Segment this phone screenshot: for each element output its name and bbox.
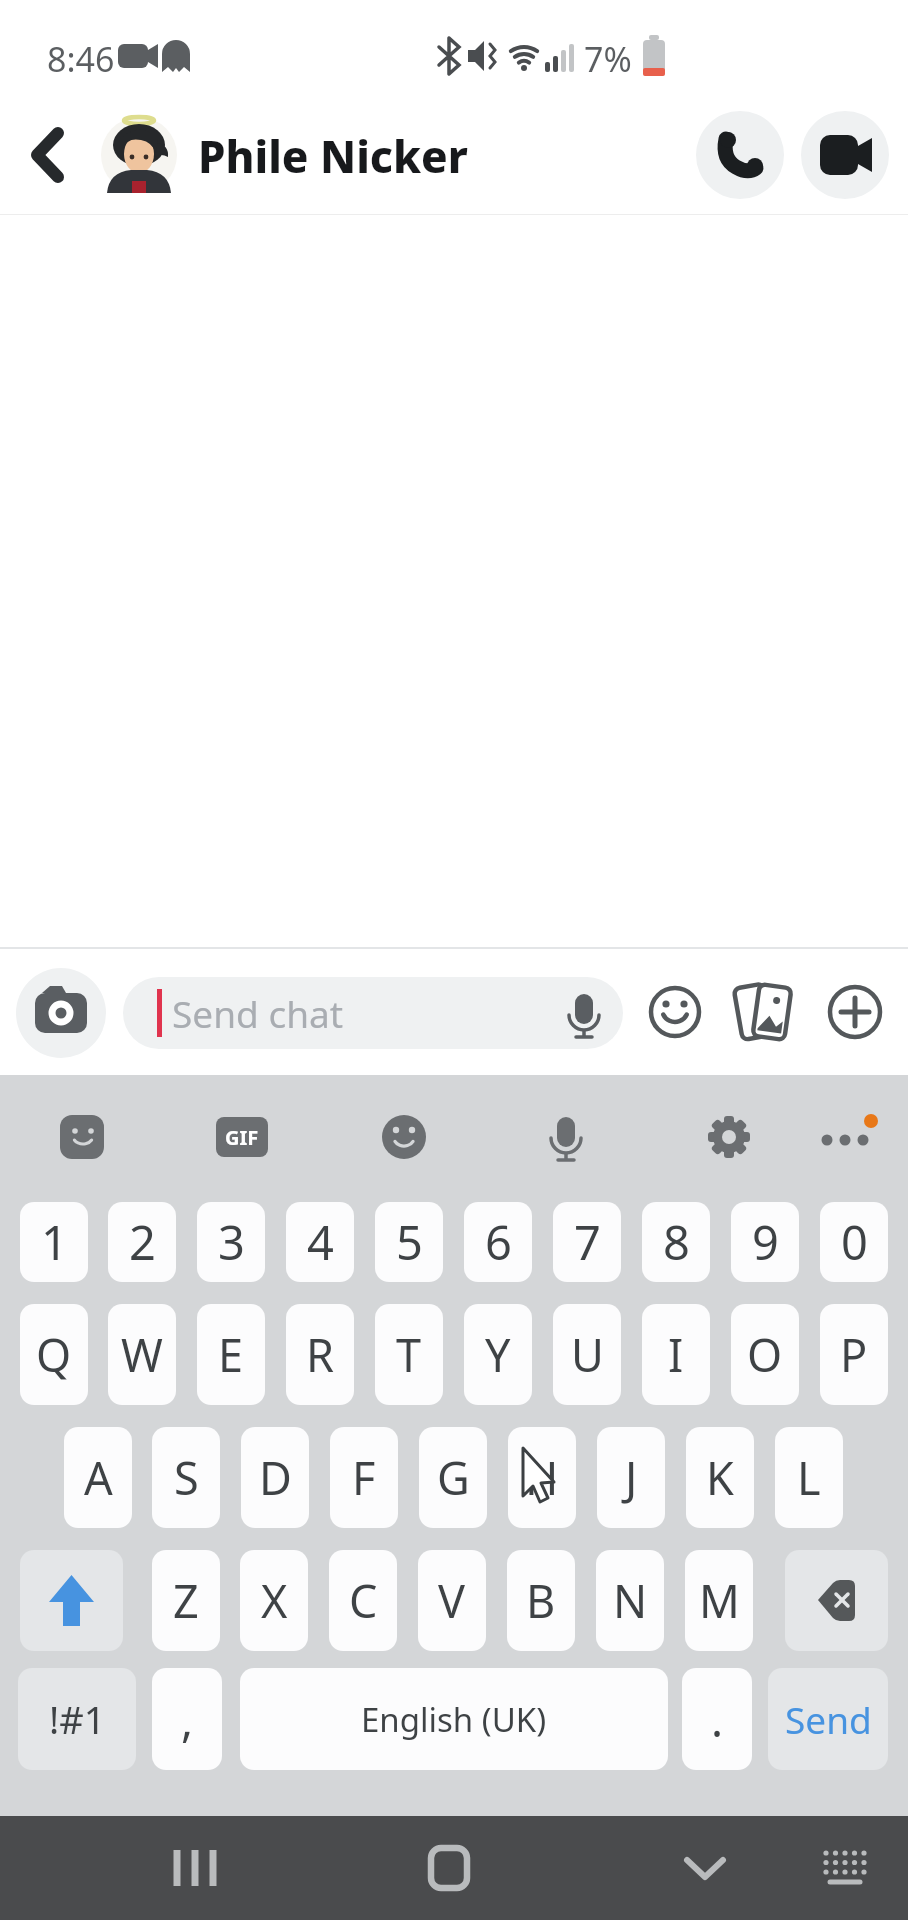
button[interactable]: N bbox=[596, 1550, 664, 1651]
staticText: G bbox=[437, 1447, 470, 1508]
button[interactable]: O bbox=[731, 1304, 799, 1405]
button[interactable]: F bbox=[330, 1427, 398, 1528]
button[interactable]: 1 bbox=[20, 1202, 88, 1282]
button[interactable] bbox=[696, 111, 784, 199]
button[interactable] bbox=[701, 1109, 757, 1165]
staticText: P bbox=[840, 1324, 868, 1385]
button[interactable]: Y bbox=[464, 1304, 532, 1405]
button[interactable] bbox=[20, 115, 80, 195]
staticText: 3 bbox=[218, 1210, 245, 1274]
button[interactable]: . bbox=[682, 1668, 752, 1770]
button[interactable]: T bbox=[375, 1304, 443, 1405]
button[interactable]: M bbox=[685, 1550, 753, 1651]
staticText: O bbox=[747, 1324, 783, 1385]
staticText: 7% bbox=[584, 36, 632, 80]
staticText: R bbox=[306, 1324, 334, 1385]
button[interactable] bbox=[123, 977, 623, 1049]
button[interactable]: 0 bbox=[820, 1202, 888, 1282]
staticText: 7 bbox=[574, 1210, 601, 1274]
staticText: !#1 bbox=[49, 1693, 106, 1745]
staticText: B bbox=[526, 1570, 556, 1631]
staticText: Q bbox=[36, 1324, 72, 1385]
staticText: T bbox=[396, 1324, 422, 1385]
button[interactable]: B bbox=[507, 1550, 575, 1651]
staticText: 0 bbox=[841, 1210, 868, 1274]
button[interactable] bbox=[815, 1836, 875, 1900]
staticText: S bbox=[174, 1447, 199, 1508]
button[interactable]: J bbox=[597, 1427, 665, 1528]
staticText: X bbox=[261, 1570, 288, 1631]
button[interactable] bbox=[160, 1836, 230, 1900]
button[interactable]: 4 bbox=[286, 1202, 354, 1282]
button[interactable]: 3 bbox=[197, 1202, 265, 1282]
button[interactable]: S bbox=[152, 1427, 220, 1528]
staticText: 2 bbox=[129, 1210, 156, 1274]
staticText: F bbox=[352, 1447, 376, 1508]
staticText: English (UK) bbox=[361, 1697, 547, 1742]
button[interactable]: 7 bbox=[553, 1202, 621, 1282]
button[interactable] bbox=[54, 1109, 110, 1165]
staticText: Z bbox=[173, 1570, 199, 1631]
staticText: A bbox=[84, 1447, 113, 1508]
staticText: E bbox=[218, 1324, 244, 1385]
button[interactable] bbox=[645, 968, 705, 1058]
button[interactable]: G bbox=[419, 1427, 487, 1528]
button[interactable]: Z bbox=[152, 1550, 220, 1651]
button[interactable]: Send bbox=[768, 1668, 888, 1770]
button[interactable] bbox=[538, 1109, 594, 1165]
staticText: Send bbox=[785, 1694, 872, 1744]
button[interactable]: C bbox=[329, 1550, 397, 1651]
staticText: 5 bbox=[396, 1210, 423, 1274]
button[interactable]: U bbox=[553, 1304, 621, 1405]
staticText: M bbox=[699, 1570, 740, 1631]
button[interactable]: 9 bbox=[731, 1202, 799, 1282]
button[interactable]: D bbox=[241, 1427, 309, 1528]
staticText: , bbox=[181, 1689, 194, 1750]
button[interactable]: 6 bbox=[464, 1202, 532, 1282]
button[interactable] bbox=[733, 968, 797, 1058]
staticText: N bbox=[613, 1570, 648, 1631]
button[interactable] bbox=[20, 1550, 123, 1651]
button[interactable]: R bbox=[286, 1304, 354, 1405]
staticText: C bbox=[349, 1570, 378, 1631]
button[interactable]: L bbox=[775, 1427, 843, 1528]
button[interactable]: X bbox=[240, 1550, 308, 1651]
button[interactable]: P bbox=[820, 1304, 888, 1405]
button[interactable] bbox=[823, 968, 885, 1058]
button[interactable]: Q bbox=[20, 1304, 88, 1405]
button[interactable]: V bbox=[418, 1550, 486, 1651]
button[interactable] bbox=[817, 1109, 881, 1165]
button[interactable]: W bbox=[108, 1304, 176, 1405]
button[interactable] bbox=[16, 968, 106, 1058]
staticText: 8:46 bbox=[47, 36, 115, 80]
button[interactable] bbox=[376, 1109, 432, 1165]
button[interactable] bbox=[785, 1550, 888, 1651]
button[interactable]: H bbox=[508, 1427, 576, 1528]
button[interactable] bbox=[670, 1836, 740, 1900]
staticText: L bbox=[797, 1447, 821, 1508]
button[interactable]: I bbox=[642, 1304, 710, 1405]
staticText: 9 bbox=[752, 1210, 779, 1274]
button[interactable]: 2 bbox=[108, 1202, 176, 1282]
staticText: V bbox=[438, 1570, 466, 1631]
button[interactable]: English (UK) bbox=[240, 1668, 668, 1770]
button[interactable] bbox=[414, 1836, 484, 1900]
staticText: Send chat bbox=[172, 988, 344, 1038]
button[interactable]: E bbox=[197, 1304, 265, 1405]
staticText: 6 bbox=[485, 1210, 512, 1274]
button[interactable]: Send chat bbox=[172, 977, 472, 1049]
button[interactable]: 8 bbox=[642, 1202, 710, 1282]
staticText: J bbox=[625, 1447, 638, 1508]
button[interactable]: !#1 bbox=[18, 1668, 136, 1770]
staticText: Phile Nicker bbox=[198, 126, 468, 186]
button[interactable] bbox=[801, 111, 889, 199]
button[interactable]: K bbox=[686, 1427, 754, 1528]
button[interactable]: 5 bbox=[375, 1202, 443, 1282]
button[interactable] bbox=[214, 1109, 270, 1165]
staticText: U bbox=[571, 1324, 604, 1385]
staticText: I bbox=[668, 1324, 684, 1385]
button[interactable]: A bbox=[64, 1427, 132, 1528]
button[interactable]: , bbox=[152, 1668, 222, 1770]
staticText: 8 bbox=[663, 1210, 690, 1274]
staticText: W bbox=[121, 1324, 163, 1385]
